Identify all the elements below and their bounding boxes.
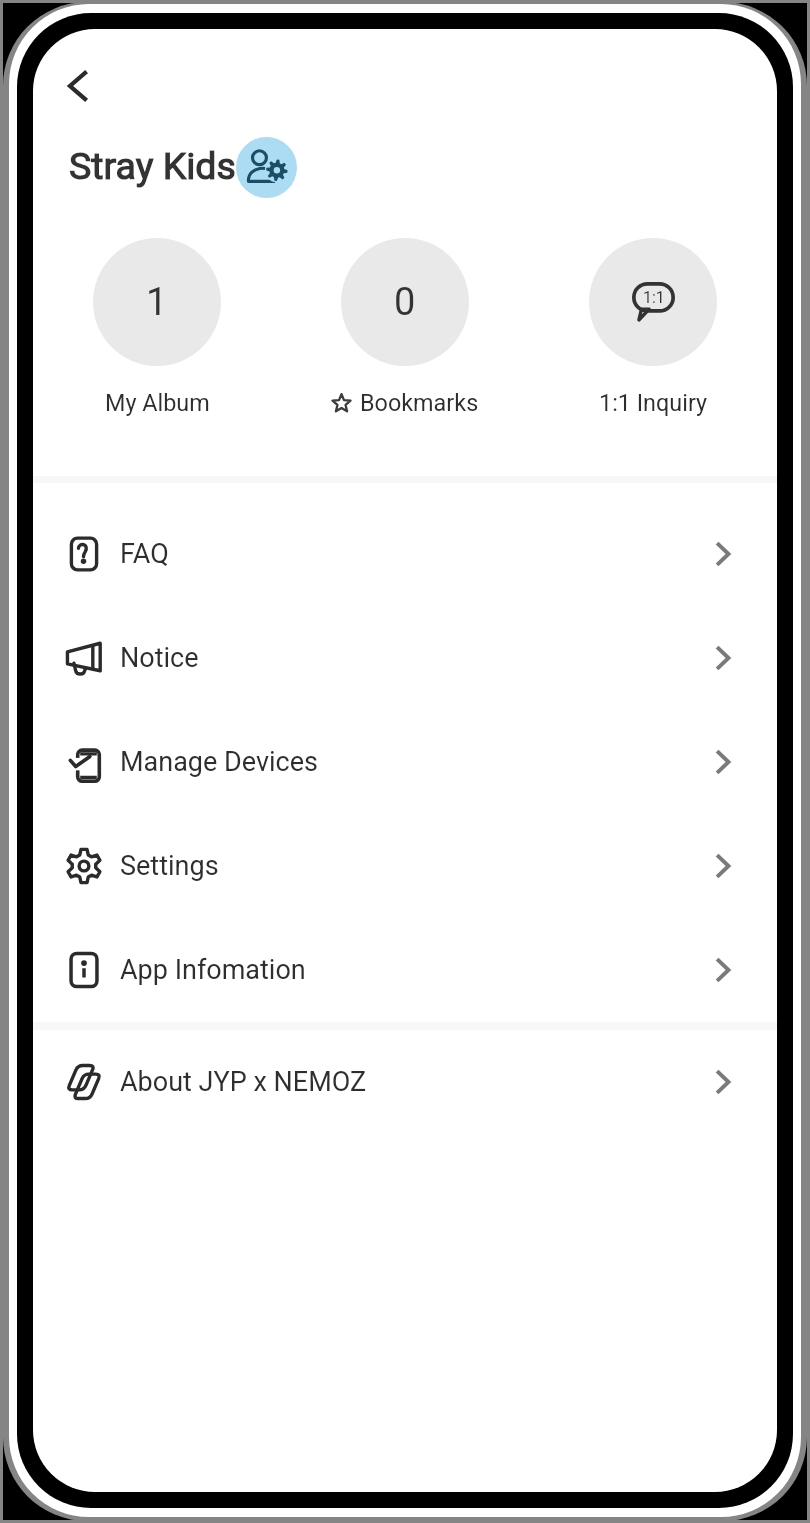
button[interactable]: Manage Devices bbox=[33, 710, 777, 814]
button[interactable]: 1 bbox=[33, 238, 281, 416]
button[interactable]: App Infomation bbox=[33, 918, 777, 1022]
staticText: 1:1 Inquiry bbox=[599, 389, 708, 416]
button[interactable]: 0 bbox=[281, 238, 529, 416]
staticText: 1 bbox=[146, 280, 168, 325]
button[interactable]: Back bbox=[48, 57, 106, 115]
staticText: 0 bbox=[394, 280, 416, 325]
staticText: About JYP x NEMOZ bbox=[120, 1066, 367, 1098]
staticText: My Album bbox=[105, 389, 210, 416]
staticText: Manage Devices bbox=[120, 746, 318, 778]
button[interactable]: 1:1 bbox=[529, 238, 777, 416]
button[interactable]: About JYP x NEMOZ bbox=[33, 1030, 777, 1134]
staticText: Settings bbox=[120, 850, 219, 882]
button[interactable]: Notice bbox=[33, 606, 777, 710]
staticText: App Infomation bbox=[120, 954, 306, 986]
staticText: FAQ bbox=[120, 538, 169, 570]
staticText: Notice bbox=[120, 642, 199, 674]
button[interactable]: Member settings bbox=[236, 137, 297, 198]
button[interactable]: Settings bbox=[33, 814, 777, 918]
button[interactable]: FAQ bbox=[33, 502, 777, 606]
staticText: Stray Kids bbox=[69, 144, 236, 188]
staticText: Bookmarks bbox=[360, 389, 479, 416]
staticText: 1:1 bbox=[643, 288, 665, 307]
